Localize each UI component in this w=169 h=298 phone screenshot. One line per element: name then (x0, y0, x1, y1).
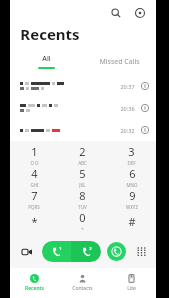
staticText: ABC (78, 160, 87, 166)
staticText: Missed Calls (99, 57, 140, 67)
button[interactable]: 9 (107, 188, 156, 210)
button[interactable]: More options (130, 3, 149, 22)
staticText: 9 (129, 188, 136, 203)
staticText: GHI (30, 182, 39, 188)
staticText: 0 (79, 210, 86, 225)
staticText: 20:37 (120, 83, 135, 90)
button[interactable]: 1 (10, 144, 58, 166)
staticText: * (31, 214, 38, 229)
staticText: # (128, 214, 136, 229)
staticText: 2 (89, 246, 92, 251)
staticText: 20:32 (120, 127, 135, 134)
staticText: MNO (126, 182, 138, 188)
staticText: JKL (79, 182, 86, 188)
staticText: TUV (78, 204, 87, 210)
staticText: Lite (127, 285, 136, 292)
staticText: 20:36 (120, 105, 135, 112)
button[interactable]: Call with SIM 2 (71, 241, 101, 262)
button[interactable]: Lite (107, 268, 156, 298)
button[interactable]: Call details (139, 80, 151, 92)
button[interactable]: 3 (107, 144, 156, 166)
staticText: Recents (20, 24, 80, 44)
button[interactable]: 2 (58, 144, 107, 166)
staticText: Contacts (72, 285, 93, 292)
staticText: DEF (127, 160, 136, 166)
button[interactable]: 20:32 (10, 119, 156, 141)
button[interactable]: 20:37 (10, 75, 156, 97)
button[interactable]: 8 (58, 188, 107, 210)
staticText: WXYZ (126, 204, 138, 210)
staticText: 8 (79, 188, 86, 203)
button[interactable]: * (10, 210, 58, 232)
button[interactable]: Call details (139, 124, 151, 136)
staticText: 6 (129, 166, 136, 181)
staticText: 1 (59, 246, 62, 251)
button[interactable]: Call details (139, 102, 151, 114)
staticText: 4 (31, 166, 38, 181)
staticText: 1 (31, 144, 38, 159)
button[interactable]: # (107, 210, 156, 232)
staticText: + (81, 226, 84, 232)
button[interactable]: Missed Calls (83, 53, 156, 70)
button[interactable]: Call with SIM 1 (42, 241, 71, 262)
button[interactable]: Search (106, 3, 125, 22)
button[interactable]: 7 (10, 188, 58, 210)
button[interactable]: WhatsApp call (107, 242, 126, 261)
button[interactable]: All (10, 53, 83, 70)
button[interactable]: 20:36 (10, 97, 156, 119)
staticText: 5 (79, 166, 86, 181)
staticText: 2 (79, 144, 86, 159)
staticText: All (42, 54, 51, 64)
button[interactable]: Video call (17, 242, 36, 261)
button[interactable]: 6 (107, 166, 156, 188)
button[interactable]: Dialpad (133, 243, 150, 260)
staticText: 3 (128, 144, 135, 159)
button[interactable]: Recents (10, 268, 58, 298)
staticText: PQRS (28, 204, 40, 210)
button[interactable]: 0 (58, 210, 107, 232)
button[interactable]: 4 (10, 166, 58, 188)
staticText: O O (30, 160, 39, 166)
button[interactable]: Contacts (58, 268, 107, 298)
button[interactable]: 5 (58, 166, 107, 188)
staticText: Recents (25, 285, 44, 292)
staticText: 7 (31, 188, 38, 203)
